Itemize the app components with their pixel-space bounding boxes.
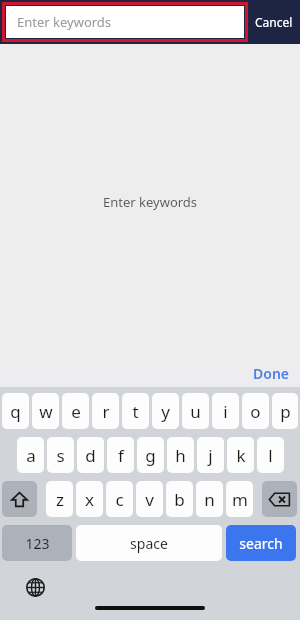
staticText: b — [174, 488, 185, 511]
staticText: m — [232, 488, 248, 511]
button[interactable]: n — [196, 481, 223, 517]
button[interactable]: Enter keywords — [6, 6, 244, 38]
staticText: u — [190, 400, 201, 423]
staticText: f — [118, 444, 124, 467]
staticText: Done — [253, 364, 290, 383]
staticText: d — [85, 444, 96, 467]
staticText: y — [161, 400, 170, 423]
staticText: c — [115, 488, 124, 511]
button[interactable]: u — [182, 393, 209, 429]
staticText: s — [56, 444, 65, 467]
button[interactable]: q — [2, 393, 29, 429]
button[interactable]: Done — [253, 364, 290, 383]
staticText: g — [145, 444, 156, 467]
button[interactable]: g — [137, 437, 164, 473]
button[interactable]: a — [17, 437, 44, 473]
button[interactable]: c — [106, 481, 133, 517]
staticText: v — [145, 488, 154, 511]
button[interactable]: Shift — [2, 481, 37, 517]
staticText: 123 — [25, 534, 50, 553]
button[interactable]: z — [46, 481, 73, 517]
staticText: j — [208, 444, 213, 467]
button[interactable]: t — [122, 393, 149, 429]
staticText: p — [280, 400, 291, 423]
button[interactable]: Change keyboard language — [20, 572, 50, 602]
staticText: Enter keywords — [103, 193, 198, 211]
button[interactable]: p — [272, 393, 298, 429]
button[interactable]: i — [212, 393, 239, 429]
staticText: z — [56, 488, 64, 511]
staticText: i — [223, 400, 228, 423]
button[interactable]: m — [226, 481, 253, 517]
staticText: space — [130, 534, 168, 553]
staticText: x — [85, 488, 94, 511]
button[interactable]: 123 — [2, 525, 72, 561]
button[interactable]: Backspace — [262, 481, 297, 517]
staticText: t — [132, 400, 139, 423]
staticText: r — [102, 400, 110, 423]
staticText: k — [236, 444, 246, 467]
button[interactable]: j — [197, 437, 224, 473]
button[interactable]: f — [107, 437, 134, 473]
staticText: q — [10, 400, 21, 423]
button[interactable]: space — [76, 525, 222, 561]
button[interactable]: d — [77, 437, 104, 473]
button[interactable]: w — [32, 393, 59, 429]
button[interactable]: v — [136, 481, 163, 517]
button[interactable]: s — [47, 437, 74, 473]
button[interactable]: h — [167, 437, 194, 473]
button[interactable]: k — [227, 437, 254, 473]
staticText: n — [204, 488, 215, 511]
button[interactable]: Cancel — [255, 0, 293, 44]
staticText: o — [250, 400, 261, 423]
staticText: Cancel — [255, 14, 293, 30]
button[interactable]: x — [76, 481, 103, 517]
button[interactable]: r — [92, 393, 119, 429]
staticText: w — [39, 400, 53, 423]
button[interactable]: e — [62, 393, 89, 429]
staticText: a — [26, 444, 36, 467]
button[interactable]: y — [152, 393, 179, 429]
button[interactable]: o — [242, 393, 269, 429]
button[interactable]: search — [226, 525, 296, 561]
button[interactable]: l — [257, 437, 284, 473]
staticText: e — [71, 400, 81, 423]
button[interactable]: b — [166, 481, 193, 517]
staticText: l — [268, 444, 273, 467]
staticText: search — [239, 534, 283, 553]
staticText: Enter keywords — [17, 13, 112, 31]
staticText: h — [175, 444, 186, 467]
